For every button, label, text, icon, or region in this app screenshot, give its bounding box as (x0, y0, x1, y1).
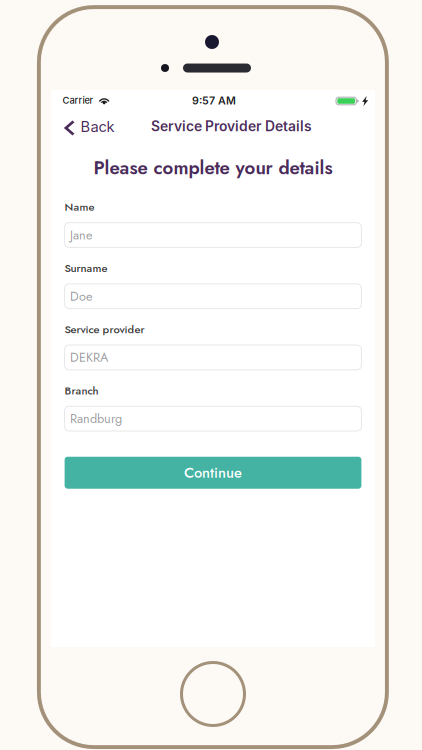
staticText: Name (65, 199, 95, 215)
button[interactable]: Continue (65, 457, 361, 489)
staticText: Service provider (65, 321, 145, 337)
staticText: Service Provider Details (151, 118, 312, 134)
staticText: 9:57 AM (192, 94, 236, 107)
button[interactable]: Randburg (65, 406, 361, 431)
staticText: DEKRA (70, 348, 108, 367)
button[interactable]: Jane (65, 223, 361, 247)
staticText: Please complete your details (93, 154, 332, 181)
staticText: Branch (65, 382, 99, 399)
staticText: Carrier (62, 95, 93, 106)
staticText: Jane (70, 226, 93, 244)
button[interactable]: DEKRA (65, 345, 361, 370)
button[interactable]: Doe (65, 284, 361, 309)
button[interactable]: Back (51, 118, 123, 135)
staticText: Back (81, 118, 115, 135)
staticText: Surname (65, 260, 108, 276)
staticText: Doe (70, 287, 93, 305)
staticText: Continue (184, 462, 242, 483)
staticText: Randburg (70, 409, 122, 428)
